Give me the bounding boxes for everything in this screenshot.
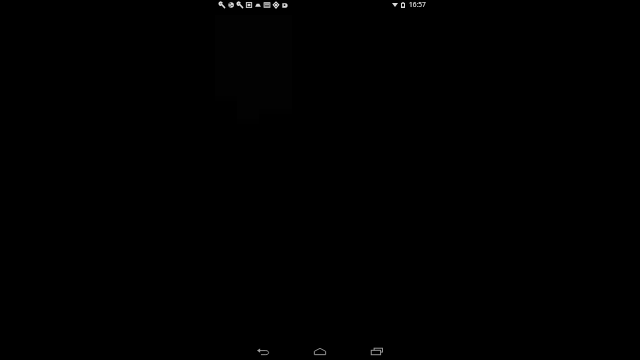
button[interactable]: Home bbox=[305, 343, 335, 360]
button[interactable]: Recents bbox=[362, 343, 392, 360]
button[interactable]: Back bbox=[248, 343, 278, 360]
staticText: 16:57 bbox=[409, 0, 426, 9]
button[interactable] bbox=[206, 0, 434, 360]
